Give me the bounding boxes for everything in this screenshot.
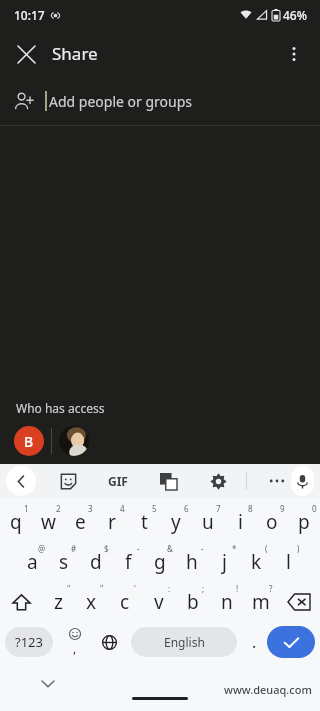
button[interactable]: t bbox=[128, 502, 160, 542]
staticText: t bbox=[141, 509, 148, 535]
staticText: 0 bbox=[312, 503, 317, 514]
staticText: GIF bbox=[108, 473, 128, 489]
button[interactable]: v bbox=[142, 582, 176, 622]
staticText: 46% bbox=[283, 7, 307, 23]
button[interactable]: o bbox=[256, 502, 288, 542]
staticText: y bbox=[171, 509, 181, 535]
button[interactable]: g bbox=[144, 542, 176, 582]
button[interactable]: d bbox=[80, 542, 112, 582]
button[interactable]: s bbox=[48, 542, 80, 582]
staticText: * bbox=[232, 543, 237, 554]
button[interactable]: a bbox=[16, 542, 48, 582]
staticText: 5 bbox=[152, 503, 157, 514]
staticText: Add people or groups bbox=[49, 92, 192, 111]
staticText: v bbox=[154, 589, 164, 615]
button[interactable]: p bbox=[288, 502, 320, 542]
staticText: x bbox=[86, 589, 97, 615]
staticText: 3 bbox=[88, 503, 93, 514]
button[interactable]: GIF bbox=[102, 467, 134, 495]
staticText: 6 bbox=[184, 503, 189, 514]
staticText: w bbox=[41, 509, 56, 535]
staticText: 7 bbox=[216, 503, 221, 514]
staticText: z bbox=[54, 589, 63, 615]
staticText: # bbox=[71, 543, 77, 554]
button[interactable]: Hide keyboard bbox=[36, 672, 60, 696]
staticText: & bbox=[167, 543, 173, 554]
button[interactable]: Shift bbox=[0, 582, 42, 622]
staticText: ! bbox=[236, 583, 239, 594]
staticText: p bbox=[298, 509, 310, 535]
staticText: ? bbox=[269, 583, 273, 594]
button[interactable]: ?123 bbox=[5, 627, 53, 657]
staticText: . bbox=[252, 631, 257, 653]
staticText: @ bbox=[38, 543, 46, 554]
button[interactable]: Voice input bbox=[291, 466, 314, 496]
staticText: k bbox=[251, 549, 262, 575]
button[interactable]: l bbox=[272, 542, 304, 582]
staticText: ( bbox=[265, 543, 268, 554]
staticText: o bbox=[266, 509, 278, 535]
staticText: c bbox=[120, 589, 130, 615]
staticText: ?123 bbox=[15, 633, 43, 651]
button[interactable]: w bbox=[32, 502, 64, 542]
button[interactable]: i bbox=[224, 502, 256, 542]
button[interactable]: x bbox=[75, 582, 108, 622]
staticText: b bbox=[187, 589, 199, 615]
button[interactable]: j bbox=[208, 542, 240, 582]
staticText: l bbox=[286, 549, 291, 575]
staticText: m bbox=[252, 589, 270, 615]
button[interactable]: Translate bbox=[154, 467, 182, 495]
button[interactable]: English bbox=[131, 627, 237, 657]
staticText: $ bbox=[104, 543, 109, 554]
button[interactable]: More bbox=[263, 467, 291, 495]
staticText: s bbox=[59, 549, 69, 575]
button[interactable]: Done bbox=[267, 626, 315, 658]
button[interactable]: f bbox=[112, 542, 144, 582]
button[interactable]: Settings bbox=[204, 467, 232, 495]
staticText: www.deuaq.com bbox=[224, 682, 312, 697]
button[interactable]: Add people or groups bbox=[0, 77, 320, 125]
button[interactable]: q bbox=[0, 502, 32, 542]
staticText: ) bbox=[297, 543, 300, 554]
button[interactable]: Stickers bbox=[54, 467, 82, 495]
staticText: , bbox=[73, 640, 77, 656]
button[interactable]: m bbox=[244, 582, 278, 622]
button[interactable]: More options bbox=[274, 34, 314, 74]
button[interactable]: Close bbox=[6, 34, 46, 74]
staticText: ; bbox=[202, 583, 205, 594]
staticText: " bbox=[100, 583, 104, 594]
button[interactable]: Back bbox=[6, 466, 36, 496]
staticText: English bbox=[164, 634, 205, 650]
button[interactable]: r bbox=[96, 502, 128, 542]
staticText: B bbox=[24, 432, 34, 451]
staticText: h bbox=[186, 549, 198, 575]
button[interactable]: y bbox=[160, 502, 192, 542]
staticText: u bbox=[202, 509, 214, 535]
button[interactable]: k bbox=[240, 542, 272, 582]
staticText: 1 bbox=[24, 503, 29, 514]
staticText: 8 bbox=[248, 503, 253, 514]
button[interactable]: u bbox=[192, 502, 224, 542]
staticText: 4 bbox=[120, 503, 125, 514]
button[interactable]: n bbox=[210, 582, 244, 622]
staticText: Share bbox=[52, 42, 98, 65]
staticText: Who has access bbox=[16, 400, 105, 416]
button[interactable]: Collaborator avatar bbox=[59, 426, 89, 456]
staticText: 2 bbox=[56, 503, 61, 514]
staticText: a bbox=[27, 549, 38, 575]
button[interactable]: Emoji bbox=[59, 625, 91, 659]
staticText: - bbox=[201, 543, 204, 554]
button[interactable]: h bbox=[176, 542, 208, 582]
button[interactable]: b bbox=[176, 582, 210, 622]
button[interactable]: Account B bbox=[14, 426, 44, 456]
staticText: g bbox=[154, 549, 166, 575]
button[interactable]: e bbox=[64, 502, 96, 542]
button[interactable]: c bbox=[108, 582, 142, 622]
button[interactable]: z bbox=[42, 582, 75, 622]
staticText: r bbox=[108, 509, 116, 535]
button[interactable]: Change language bbox=[93, 625, 125, 659]
staticText: 9 bbox=[280, 503, 285, 514]
button[interactable]: Backspace bbox=[278, 582, 320, 622]
button[interactable]: . bbox=[243, 625, 265, 659]
staticText: i bbox=[238, 509, 243, 535]
